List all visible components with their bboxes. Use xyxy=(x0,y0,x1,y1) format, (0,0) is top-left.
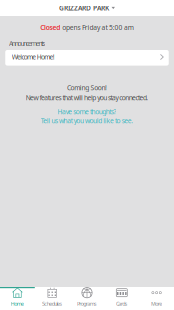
staticText: Cards xyxy=(116,300,128,307)
button[interactable]: Cards xyxy=(104,287,139,310)
button[interactable]: Schedules xyxy=(35,287,70,310)
button[interactable]: Home xyxy=(0,287,35,310)
staticText: Closed xyxy=(40,23,60,32)
staticText: More xyxy=(151,300,162,307)
staticText: GRIZZARD PARK xyxy=(59,4,109,12)
button[interactable]: More xyxy=(139,287,174,310)
staticText: Schedules xyxy=(42,300,62,307)
staticText: Welcome Home! xyxy=(12,53,55,61)
staticText: opens Friday at 5:00 am xyxy=(62,23,134,32)
staticText: Home xyxy=(11,300,24,307)
staticText: Programs xyxy=(77,300,97,307)
button[interactable]: Programs xyxy=(70,287,104,310)
staticText: Announcements xyxy=(9,39,45,48)
staticText: Have some thoughts? xyxy=(58,107,116,116)
staticText: Tell us what you would like to see. xyxy=(41,116,133,125)
staticText: New features that will help you stay con… xyxy=(26,93,148,102)
button[interactable]: GRIZZARD PARK xyxy=(0,0,174,16)
staticText: Coming Soon! xyxy=(67,83,107,92)
button[interactable]: Welcome Home! xyxy=(5,50,169,66)
